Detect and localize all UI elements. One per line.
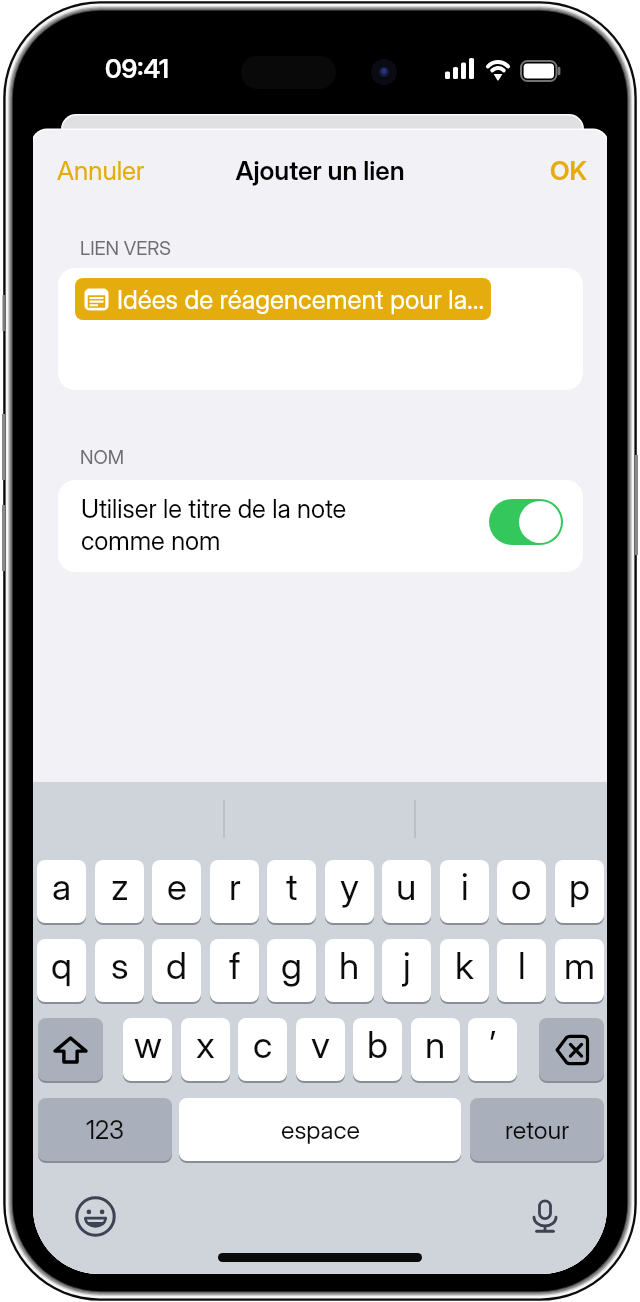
staticText: ’ — [489, 1022, 497, 1067]
staticText: u — [396, 864, 417, 909]
button[interactable]: r — [210, 860, 259, 923]
button[interactable]: n — [411, 1018, 460, 1081]
button[interactable]: Utiliser le titre de la note comme nom — [489, 499, 563, 545]
button[interactable]: OK — [544, 150, 593, 191]
button[interactable]: q — [37, 939, 86, 1002]
button[interactable]: g — [267, 939, 316, 1002]
staticText: Utiliser le titre de la note comme nom — [81, 493, 347, 557]
staticText: h — [339, 943, 360, 988]
button[interactable]: x — [181, 1018, 230, 1081]
button[interactable]: m — [555, 939, 604, 1002]
button[interactable]: s — [95, 939, 144, 1002]
staticText: f — [229, 943, 241, 988]
staticText: s — [111, 943, 129, 988]
button[interactable]: l — [497, 939, 546, 1002]
button[interactable]: b — [353, 1018, 402, 1081]
other: Majuscule — [54, 1036, 87, 1064]
staticText: j — [403, 943, 411, 988]
staticText: y — [340, 864, 359, 909]
button[interactable]: i — [440, 860, 489, 923]
staticText: n — [425, 1022, 446, 1067]
button[interactable]: a — [37, 860, 86, 923]
button[interactable]: f — [210, 939, 259, 1002]
staticText: b — [367, 1022, 388, 1067]
staticText: d — [166, 943, 187, 988]
button[interactable]: espace — [179, 1098, 461, 1161]
button[interactable]: Majuscule — [38, 1018, 103, 1081]
staticText: l — [518, 943, 526, 988]
button[interactable]: Utiliser le titre de la note comme nom — [58, 480, 583, 572]
staticText: m — [564, 943, 596, 988]
button[interactable]: k — [440, 939, 489, 1002]
button[interactable]: u — [382, 860, 431, 923]
staticText: r — [229, 864, 241, 909]
button[interactable]: ’ — [468, 1018, 517, 1081]
button[interactable]: Idées de réagencement pour la… — [75, 278, 491, 320]
staticText: c — [253, 1022, 273, 1067]
button[interactable]: w — [123, 1018, 172, 1081]
staticText: e — [167, 864, 187, 909]
button[interactable]: t — [267, 860, 316, 923]
button[interactable]: z — [95, 860, 144, 923]
staticText: retour — [505, 1115, 570, 1145]
staticText: 09:41 — [105, 53, 169, 84]
staticText: x — [196, 1022, 215, 1067]
staticText: Ajouter un lien — [33, 155, 607, 186]
button[interactable]: 123 — [38, 1098, 172, 1161]
other: Supprimer — [556, 1036, 588, 1064]
staticText: q — [51, 943, 72, 988]
staticText: Annuler — [57, 155, 145, 186]
button[interactable]: j — [382, 939, 431, 1002]
button[interactable]: d — [152, 939, 201, 1002]
button[interactable]: o — [497, 860, 546, 923]
button[interactable]: Annuler — [51, 150, 151, 191]
staticText: a — [52, 864, 72, 909]
staticText: v — [311, 1022, 330, 1067]
button[interactable]: retour — [470, 1098, 604, 1161]
staticText: OK — [550, 155, 587, 186]
staticText: z — [111, 864, 129, 909]
staticText: espace — [281, 1115, 360, 1145]
button[interactable]: c — [238, 1018, 287, 1081]
staticText: Idées de réagencement pour la… — [117, 284, 485, 315]
staticText: p — [569, 864, 590, 909]
staticText: w — [134, 1022, 162, 1067]
staticText: NOM — [80, 446, 125, 469]
button[interactable]: p — [555, 860, 604, 923]
staticText: 123 — [86, 1115, 125, 1145]
staticText: g — [281, 943, 302, 988]
button[interactable]: Dictée — [523, 1194, 567, 1238]
staticText: t — [286, 864, 298, 909]
button[interactable]: e — [152, 860, 201, 923]
button[interactable]: v — [296, 1018, 345, 1081]
staticText: o — [511, 864, 532, 909]
button[interactable]: Supprimer — [539, 1018, 604, 1081]
button[interactable]: y — [325, 860, 374, 923]
staticText: LIEN VERS — [80, 237, 171, 260]
staticText: k — [455, 943, 474, 988]
button[interactable]: Emoji — [73, 1194, 117, 1238]
staticText: i — [461, 864, 469, 909]
button[interactable]: h — [325, 939, 374, 1002]
